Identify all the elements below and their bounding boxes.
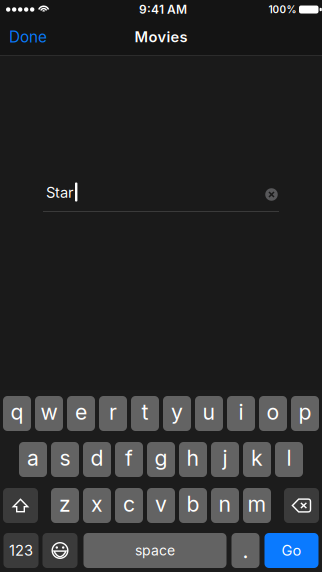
button[interactable]: t	[131, 396, 159, 431]
staticText: z	[59, 491, 71, 517]
staticText: d	[90, 445, 103, 471]
button[interactable]: Emoji keyboard	[42, 533, 77, 568]
button[interactable]: d	[83, 442, 111, 477]
staticText: Go	[281, 542, 301, 559]
staticText: h	[186, 445, 199, 471]
staticText: i	[238, 399, 243, 425]
staticText: 100%	[268, 3, 296, 16]
button[interactable]: c	[115, 488, 143, 523]
button[interactable]: Shift	[3, 488, 38, 523]
button[interactable]: u	[195, 396, 223, 431]
button[interactable]: l	[275, 442, 303, 477]
staticText: e	[75, 399, 87, 425]
staticText: r	[109, 399, 117, 425]
button[interactable]: Done	[0, 20, 56, 54]
button[interactable]: i	[227, 396, 255, 431]
staticText: f	[125, 445, 133, 471]
button[interactable]: h	[179, 442, 207, 477]
staticText: o	[266, 399, 279, 425]
button[interactable]: b	[179, 488, 207, 523]
staticText: m	[247, 491, 266, 517]
staticText: p	[298, 399, 311, 425]
button[interactable]: v	[147, 488, 175, 523]
staticText: 123	[9, 542, 33, 559]
staticText: Star	[46, 184, 74, 201]
staticText: j	[222, 445, 227, 471]
staticText: v	[155, 491, 167, 517]
button[interactable]: f	[115, 442, 143, 477]
button[interactable]: s	[51, 442, 79, 477]
button[interactable]: 123	[3, 533, 38, 568]
button[interactable]: p	[291, 396, 319, 431]
button[interactable]: Delete	[284, 488, 319, 523]
staticText: .	[242, 538, 248, 563]
staticText: x	[91, 491, 103, 517]
button[interactable]: Go	[264, 533, 318, 568]
staticText: s	[59, 445, 70, 471]
staticText: 9:41 AM	[139, 2, 187, 17]
staticText: y	[171, 399, 183, 425]
button[interactable]: n	[211, 488, 239, 523]
button[interactable]: space	[83, 533, 226, 568]
button[interactable]: w	[35, 396, 63, 431]
staticText: k	[251, 445, 263, 471]
button[interactable]: e	[67, 396, 95, 431]
button[interactable]: .	[231, 533, 259, 568]
button[interactable]: z	[51, 488, 79, 523]
staticText: w	[40, 399, 57, 425]
button[interactable]: m	[243, 488, 271, 523]
staticText: b	[186, 491, 199, 517]
staticText: g	[154, 445, 167, 471]
button[interactable]: a	[19, 442, 47, 477]
button[interactable]: x	[83, 488, 111, 523]
button[interactable]: y	[163, 396, 191, 431]
staticText: a	[27, 445, 39, 471]
staticText: l	[286, 445, 291, 471]
staticText: q	[10, 399, 23, 425]
staticText: Movies	[134, 28, 187, 46]
staticText: u	[202, 399, 215, 425]
button[interactable]: o	[259, 396, 287, 431]
staticText: n	[218, 491, 231, 517]
button[interactable]: g	[147, 442, 175, 477]
button[interactable]: q	[3, 396, 31, 431]
button[interactable]: k	[243, 442, 271, 477]
button[interactable]: Clear text	[266, 181, 279, 204]
staticText: Done	[9, 28, 47, 46]
button[interactable]: r	[99, 396, 127, 431]
staticText: t	[141, 399, 148, 425]
staticText: space	[135, 542, 175, 559]
staticText: c	[123, 491, 135, 517]
button[interactable]: j	[211, 442, 239, 477]
